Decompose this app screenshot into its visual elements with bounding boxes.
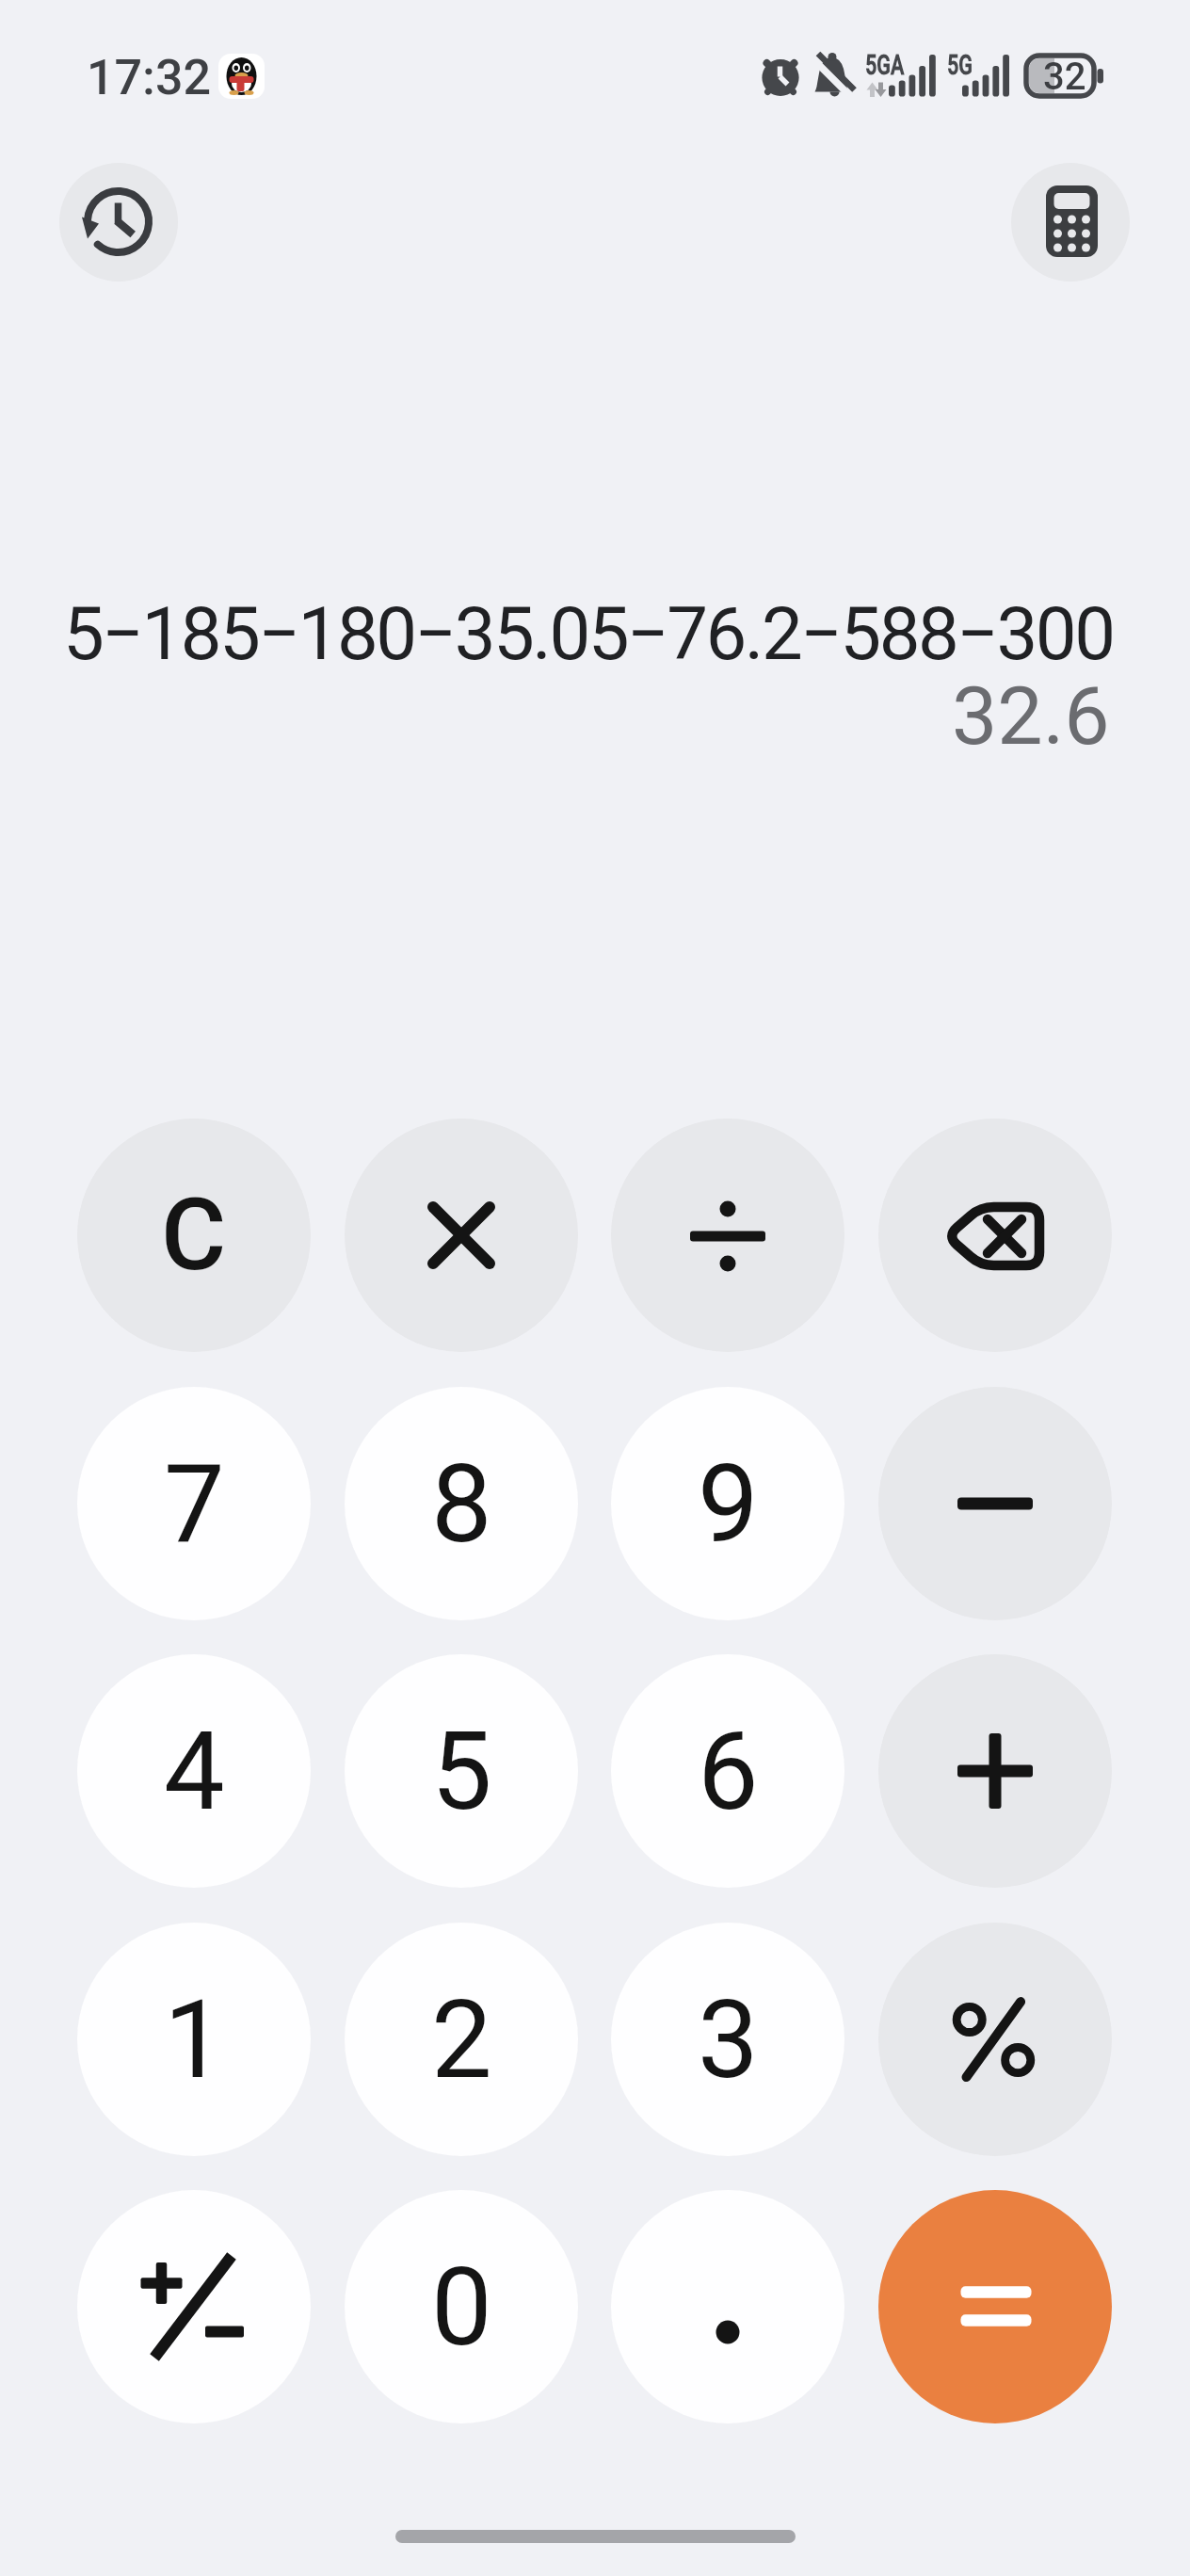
button[interactable]	[59, 163, 178, 282]
button[interactable]	[1011, 163, 1130, 282]
staticText: C	[161, 1177, 227, 1294]
staticText: 5GA	[865, 48, 905, 81]
staticText: 32	[1043, 55, 1086, 98]
staticText: 5G	[947, 48, 973, 81]
button[interactable]: 6	[611, 1654, 844, 1888]
staticText: 5−185−180−35.05−76.2−588−300	[63, 591, 1114, 676]
button[interactable]	[345, 1119, 578, 1352]
staticText: 2	[431, 1976, 492, 2103]
staticText: 17:32	[87, 49, 212, 106]
button[interactable]: 9	[611, 1387, 844, 1620]
button[interactable]: 2	[345, 1923, 578, 2156]
staticText: 9	[698, 1441, 759, 1568]
button[interactable]	[611, 2190, 844, 2423]
button[interactable]: 4	[77, 1654, 311, 1888]
button[interactable]: 5	[345, 1654, 578, 1888]
button[interactable]	[878, 1923, 1112, 2156]
staticText: 3	[698, 1976, 759, 2103]
staticText: 32.6	[952, 668, 1110, 763]
button[interactable]: 1	[77, 1923, 311, 2156]
staticText: 5	[431, 1708, 492, 1835]
staticText: 0	[431, 2244, 492, 2371]
button[interactable]: C	[77, 1119, 311, 1352]
button[interactable]: 0	[345, 2190, 578, 2423]
button[interactable]	[878, 1654, 1112, 1888]
button[interactable]	[611, 1119, 844, 1352]
staticText: 4	[164, 1708, 225, 1835]
button[interactable]: 7	[77, 1387, 311, 1620]
button[interactable]	[878, 1119, 1112, 1352]
button[interactable]	[878, 1387, 1112, 1620]
button[interactable]: 3	[611, 1923, 844, 2156]
staticText: 8	[431, 1441, 492, 1568]
button[interactable]: 8	[345, 1387, 578, 1620]
staticText: 6	[698, 1708, 759, 1835]
staticText: 1	[164, 1976, 225, 2103]
button[interactable]	[878, 2190, 1112, 2423]
button[interactable]	[77, 2190, 311, 2423]
staticText: 7	[164, 1441, 225, 1568]
